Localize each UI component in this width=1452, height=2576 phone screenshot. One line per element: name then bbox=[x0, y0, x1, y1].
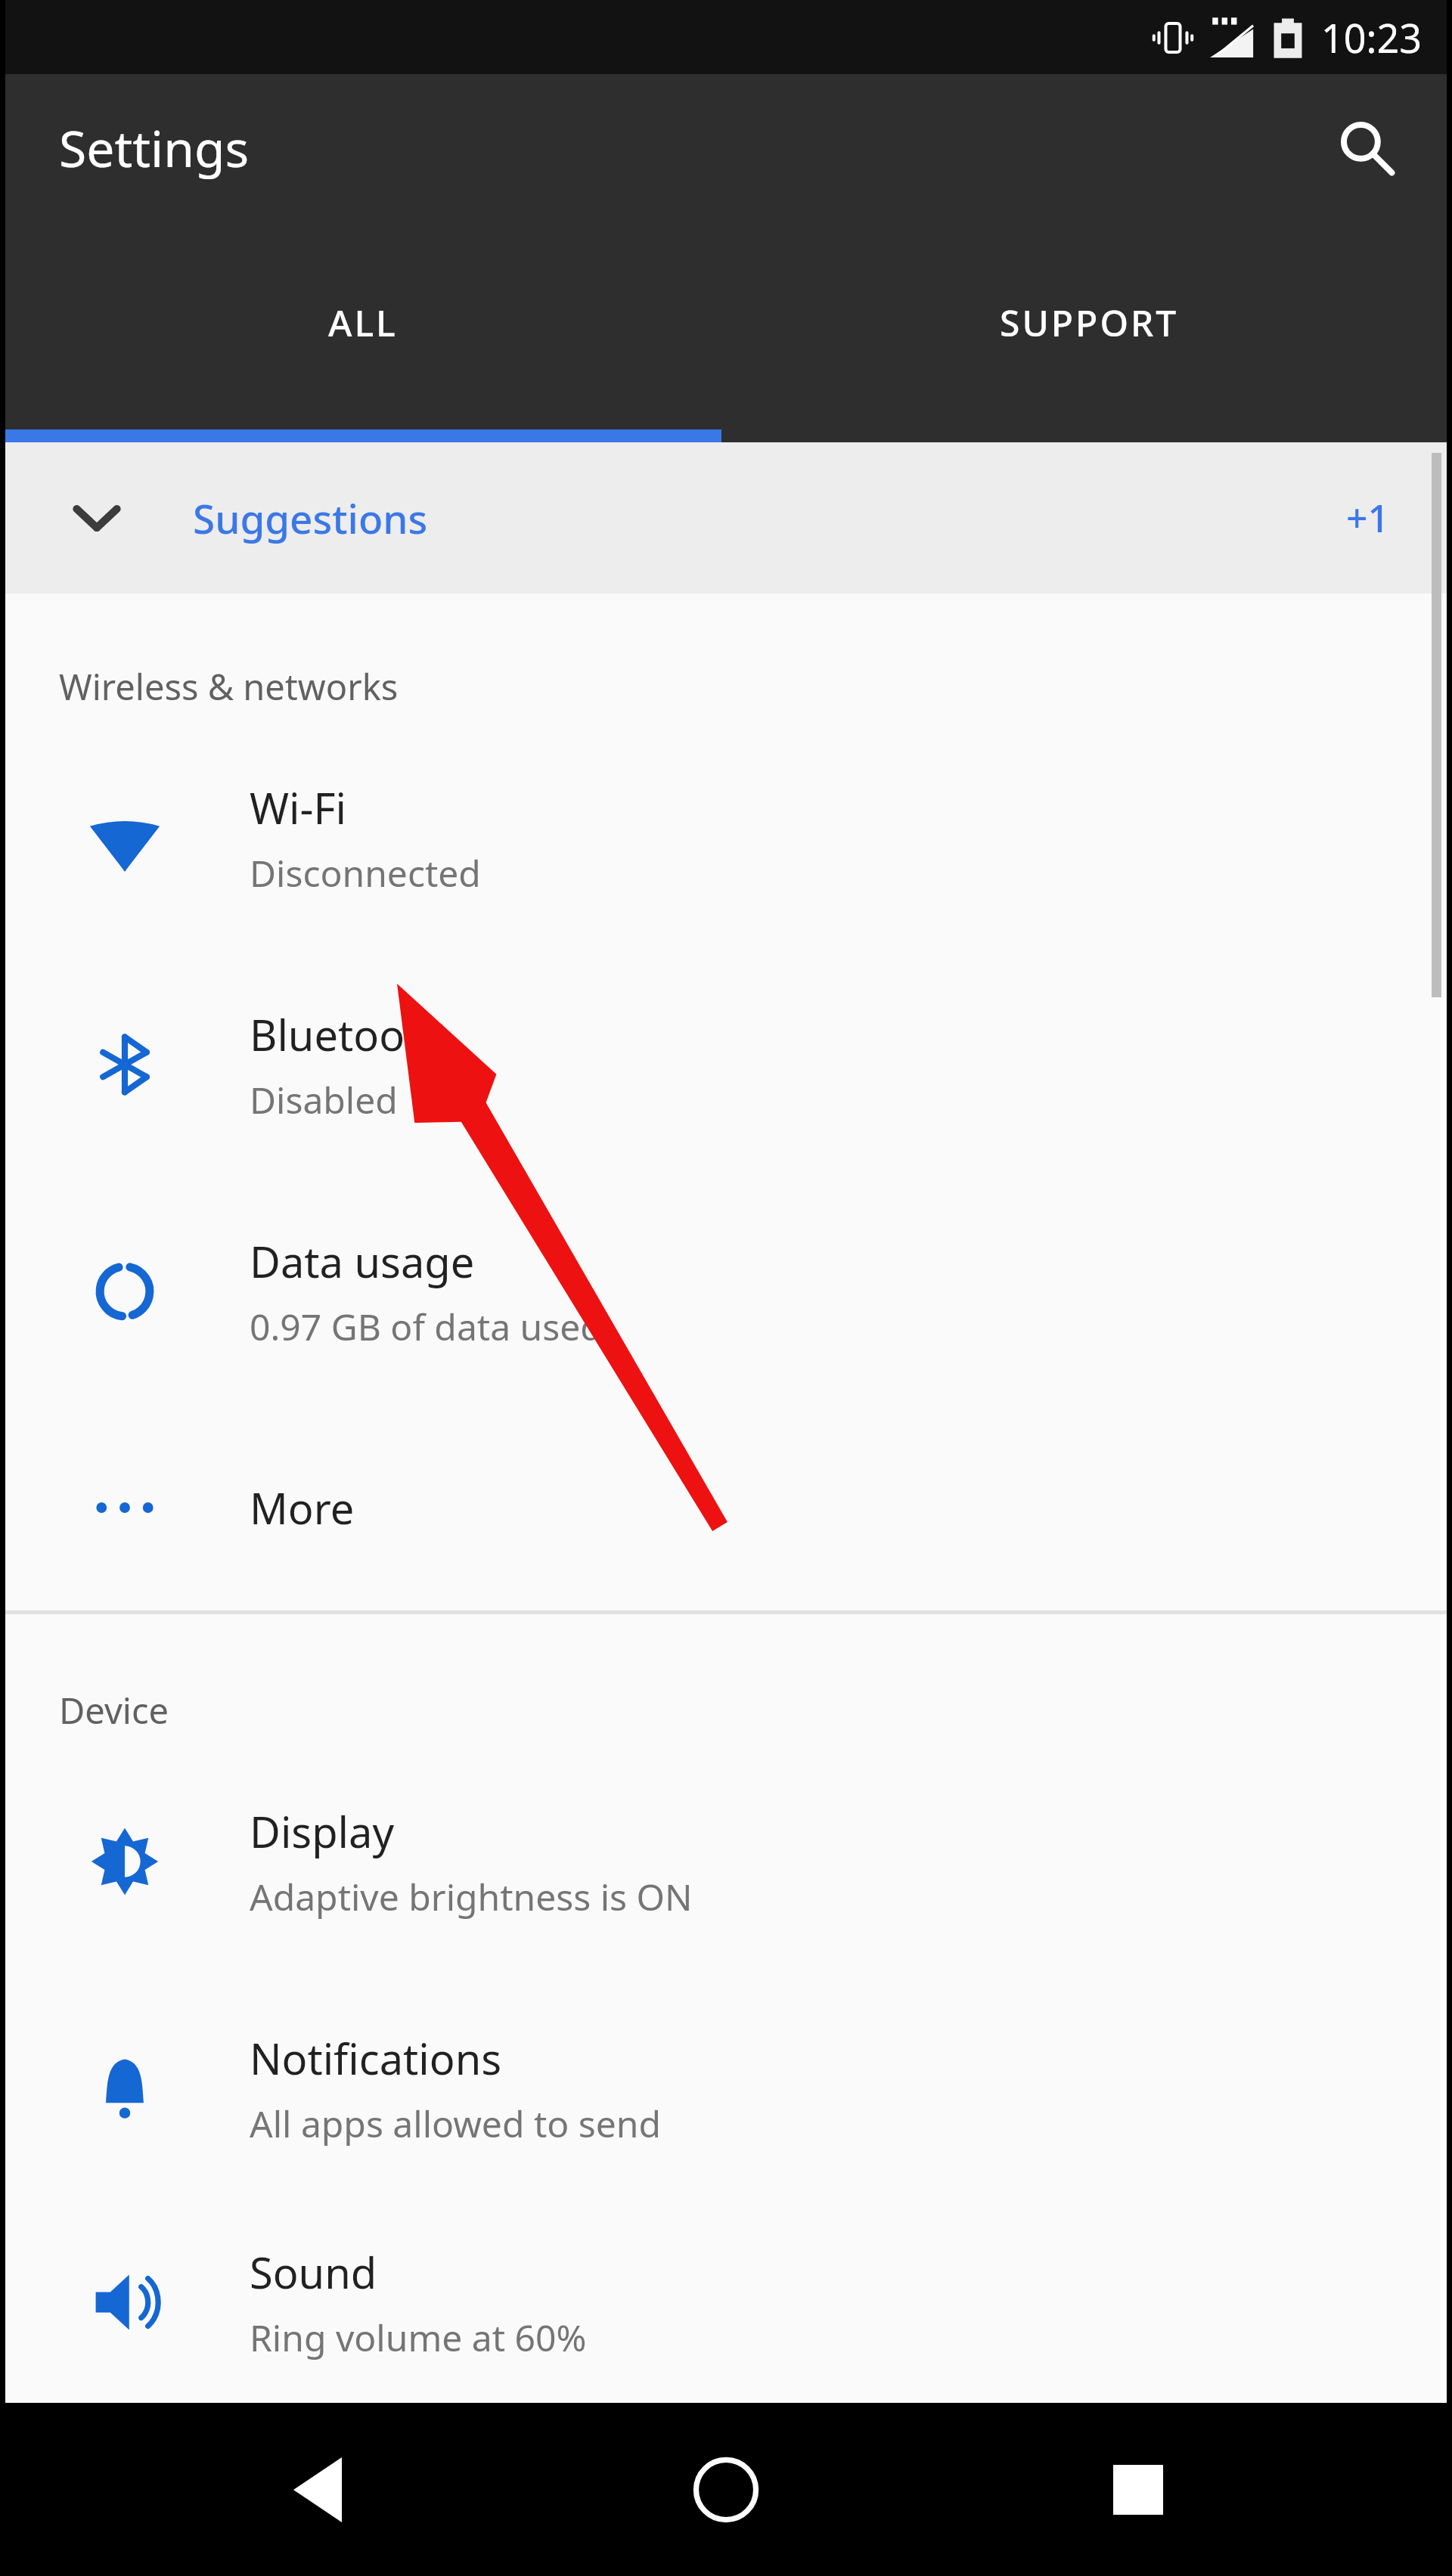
staticText: 10:23 bbox=[1321, 11, 1422, 64]
button[interactable]: Data usage bbox=[0, 1178, 1452, 1405]
staticText: Wi-Fi bbox=[250, 779, 347, 836]
button[interactable]: Wi-Fi bbox=[0, 724, 1452, 951]
staticText: Display bbox=[250, 1803, 395, 1860]
staticText: 0.97 GB of data used bbox=[250, 1302, 603, 1351]
button[interactable]: Search bbox=[1325, 106, 1408, 189]
staticText: Adaptive brightness is ON bbox=[250, 1872, 693, 1921]
button[interactable]: Home bbox=[658, 2422, 794, 2558]
staticText: Device bbox=[59, 1686, 169, 1734]
staticText: Suggestions bbox=[193, 491, 428, 545]
button[interactable]: Recent apps bbox=[1070, 2422, 1206, 2558]
staticText: More bbox=[250, 1479, 355, 1536]
button[interactable]: Sound bbox=[0, 2202, 1452, 2403]
staticText: Disconnected bbox=[250, 848, 481, 897]
button[interactable]: Notifications bbox=[0, 1975, 1452, 2202]
staticText: SUPPORT bbox=[1000, 298, 1179, 347]
staticText: ALL bbox=[328, 298, 398, 347]
button[interactable]: Display bbox=[0, 1748, 1452, 1975]
staticText: Notifications bbox=[250, 2029, 502, 2087]
button[interactable]: SUPPORT bbox=[726, 220, 1452, 424]
staticText: +1 bbox=[1346, 492, 1390, 544]
button[interactable]: Suggestions bbox=[0, 442, 1452, 594]
button[interactable]: Back bbox=[250, 2422, 386, 2558]
button[interactable]: More bbox=[0, 1405, 1452, 1610]
staticText: All apps allowed to send bbox=[250, 2099, 662, 2148]
button[interactable]: Bluetooth bbox=[0, 951, 1452, 1178]
staticText: Disabled bbox=[250, 1075, 398, 1124]
staticText: Data usage bbox=[250, 1232, 475, 1290]
staticText: Ring volume at 60% bbox=[250, 2313, 587, 2362]
staticText: Bluetooth bbox=[250, 1006, 446, 1063]
staticText: Wireless & networks bbox=[59, 662, 399, 711]
button[interactable]: ALL bbox=[0, 220, 726, 424]
staticText: Settings bbox=[59, 113, 250, 181]
staticText: Sound bbox=[250, 2243, 377, 2301]
